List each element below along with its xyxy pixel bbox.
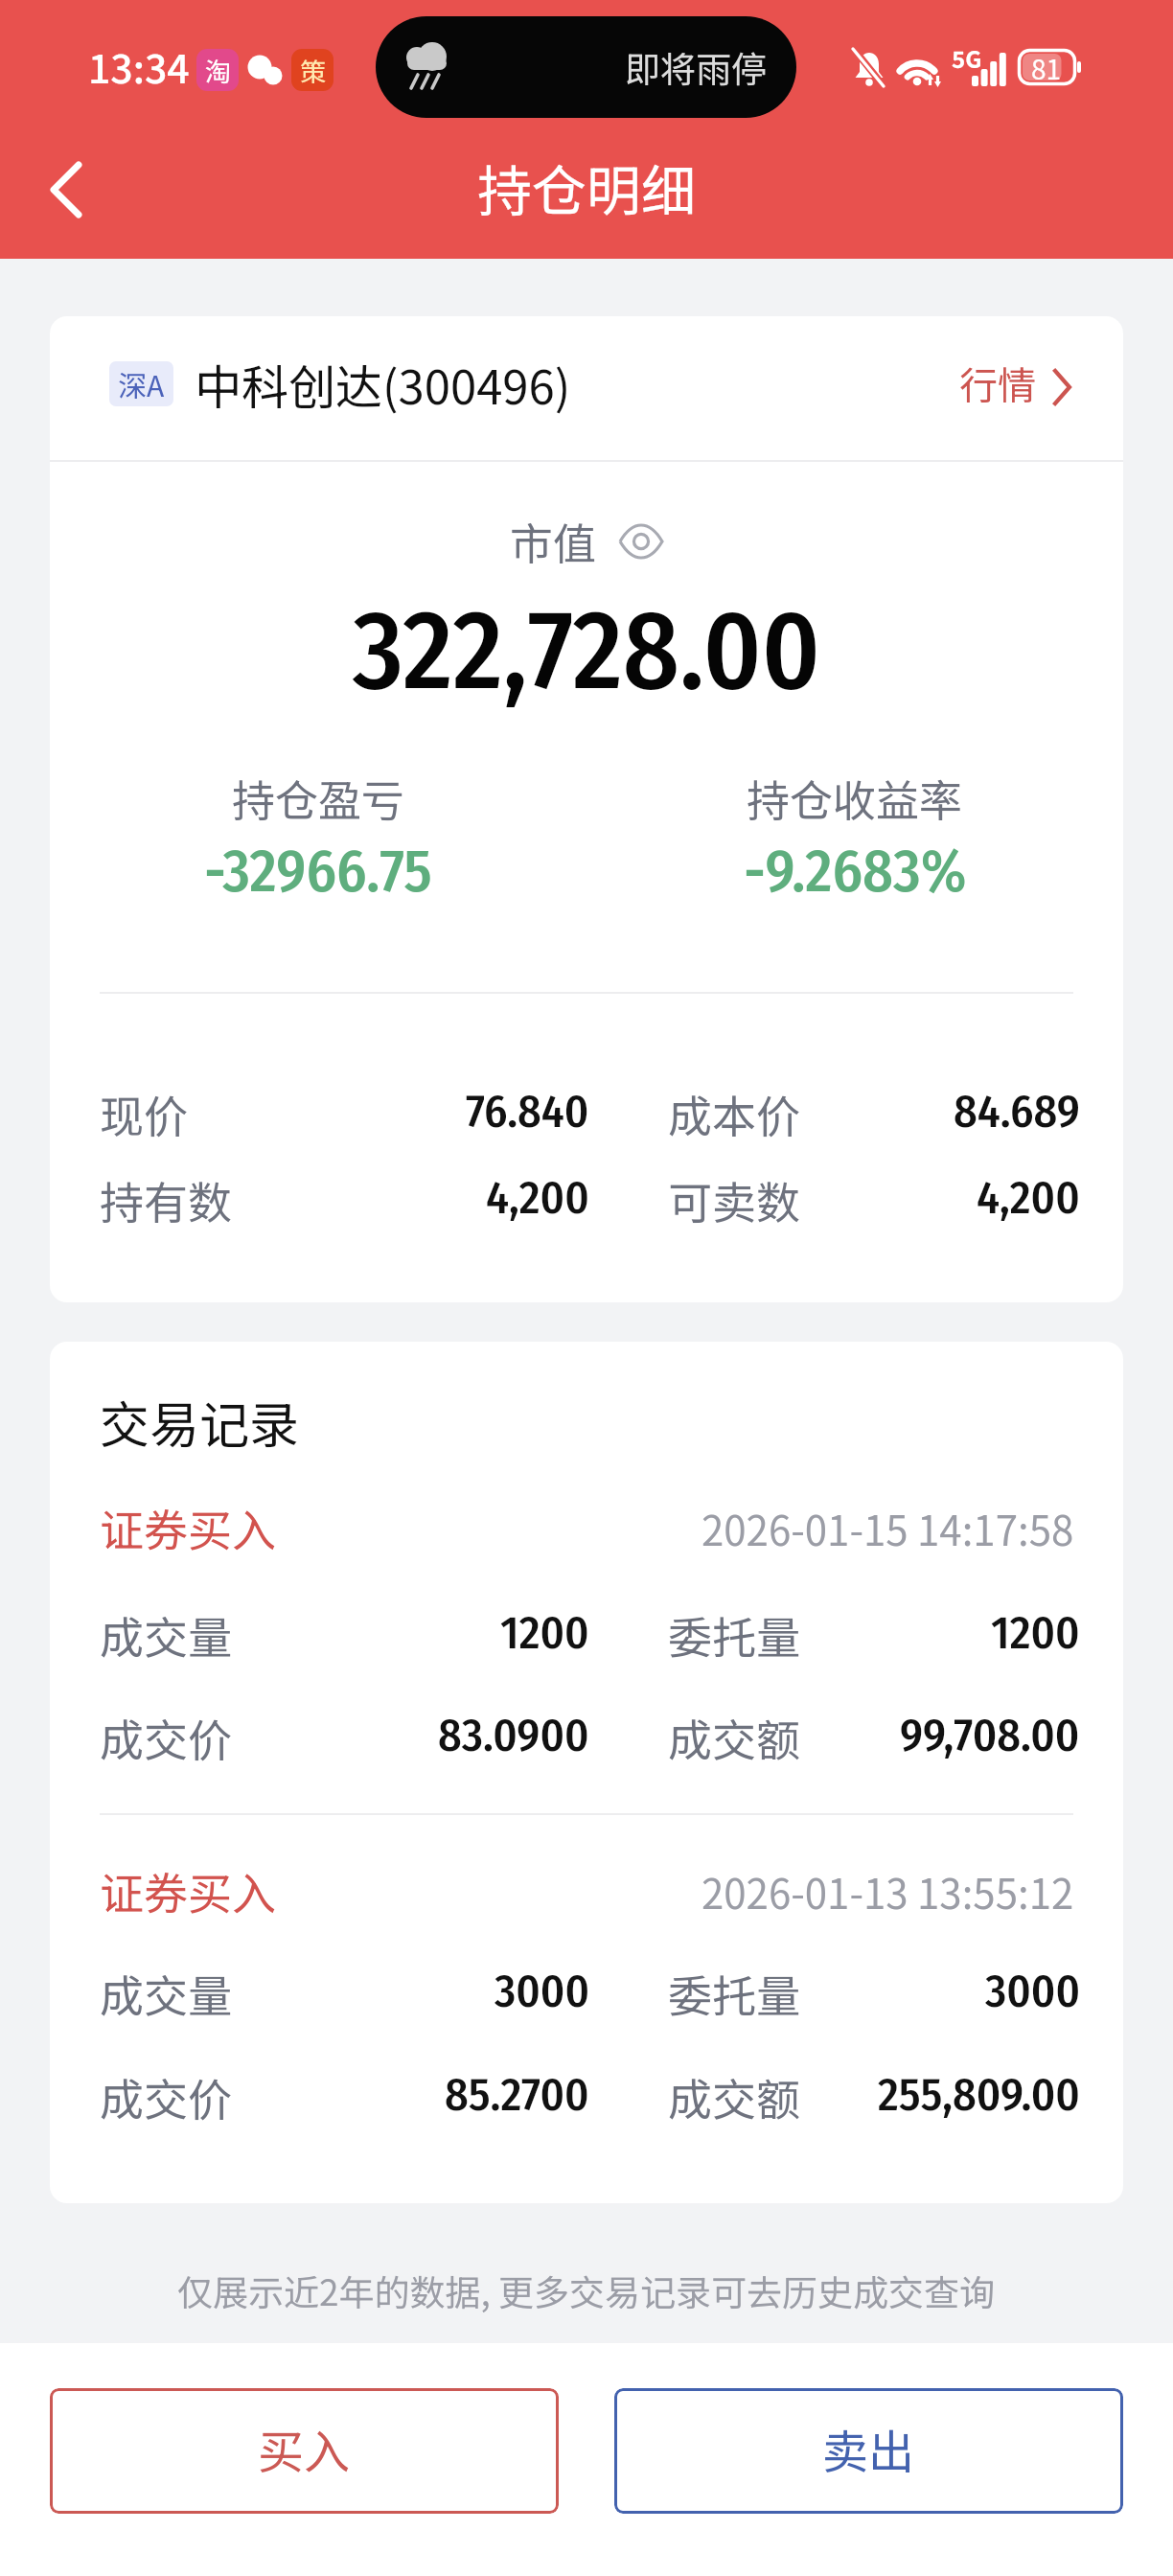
staticText: -32966.75 (204, 836, 432, 907)
staticText: 83.0900 (438, 1708, 589, 1763)
staticText: 委托量 (668, 1603, 800, 1663)
staticText: 99,708.00 (900, 1708, 1080, 1763)
staticText: 成交量 (100, 1962, 232, 2021)
staticText: 5G (952, 41, 982, 75)
staticText: 委托量 (668, 1962, 800, 2021)
staticText: 成交价 (100, 1706, 232, 1765)
staticText: 2026-01-13 13:55:12 (701, 1862, 1074, 1920)
staticText: 成交额 (668, 2065, 800, 2125)
staticText: 即将雨停 (625, 41, 767, 93)
staticText: 4,200 (486, 1170, 589, 1226)
staticText: 卖出 (822, 2415, 915, 2482)
staticText: 持仓收益率 (747, 767, 963, 829)
button[interactable]: Back (22, 149, 104, 231)
staticText: 85.2700 (445, 2067, 589, 2123)
staticText: 持有数 (100, 1168, 232, 1228)
staticText: 现价 (100, 1082, 188, 1141)
staticText: 成交价 (100, 2065, 232, 2125)
staticText: 中科创达(300496) (195, 350, 571, 418)
button[interactable]: 卖出 (614, 2388, 1123, 2514)
staticText: 行情 (959, 356, 1036, 411)
staticText: 可卖数 (668, 1168, 800, 1228)
staticText: 3000 (494, 1964, 589, 2019)
staticText: 76.840 (466, 1084, 589, 1139)
staticText: 持仓明细 (477, 148, 696, 227)
staticText: 买入 (258, 2415, 351, 2482)
staticText: 2026-01-15 14:17:58 (701, 1499, 1074, 1557)
staticText: 成交量 (100, 1603, 232, 1663)
button[interactable]: 深A (50, 316, 1123, 460)
staticText: 322,728.00 (50, 585, 1123, 717)
staticText: -9.2683% (744, 836, 967, 907)
staticText: 4,200 (977, 1170, 1080, 1226)
button[interactable]: 即将雨停 (376, 16, 796, 118)
staticText: 1200 (500, 1605, 589, 1661)
staticText: 证券买入 (100, 1496, 276, 1560)
staticText: 84.689 (954, 1084, 1080, 1139)
staticText: 交易记录 (100, 1386, 300, 1458)
staticText: 3000 (985, 1964, 1080, 2019)
staticText: 策 (300, 52, 326, 89)
staticText: 1200 (991, 1605, 1080, 1661)
staticText: 成本价 (668, 1082, 800, 1141)
staticText: 81 (1031, 49, 1062, 85)
staticText: 成交额 (668, 1706, 800, 1765)
staticText: 证券买入 (100, 1859, 276, 1923)
staticText: 淘 (205, 52, 231, 89)
button[interactable]: 买入 (50, 2388, 559, 2514)
staticText: 市值 (510, 510, 597, 572)
staticText: 13:34 (88, 37, 190, 94)
staticText: 255,809.00 (878, 2067, 1080, 2123)
staticText: 持仓盈亏 (232, 767, 405, 829)
staticText: 仅展示近2年的数据, 更多交易记录可去历史成交查询 (177, 2265, 996, 2316)
staticText: 深A (118, 363, 165, 404)
